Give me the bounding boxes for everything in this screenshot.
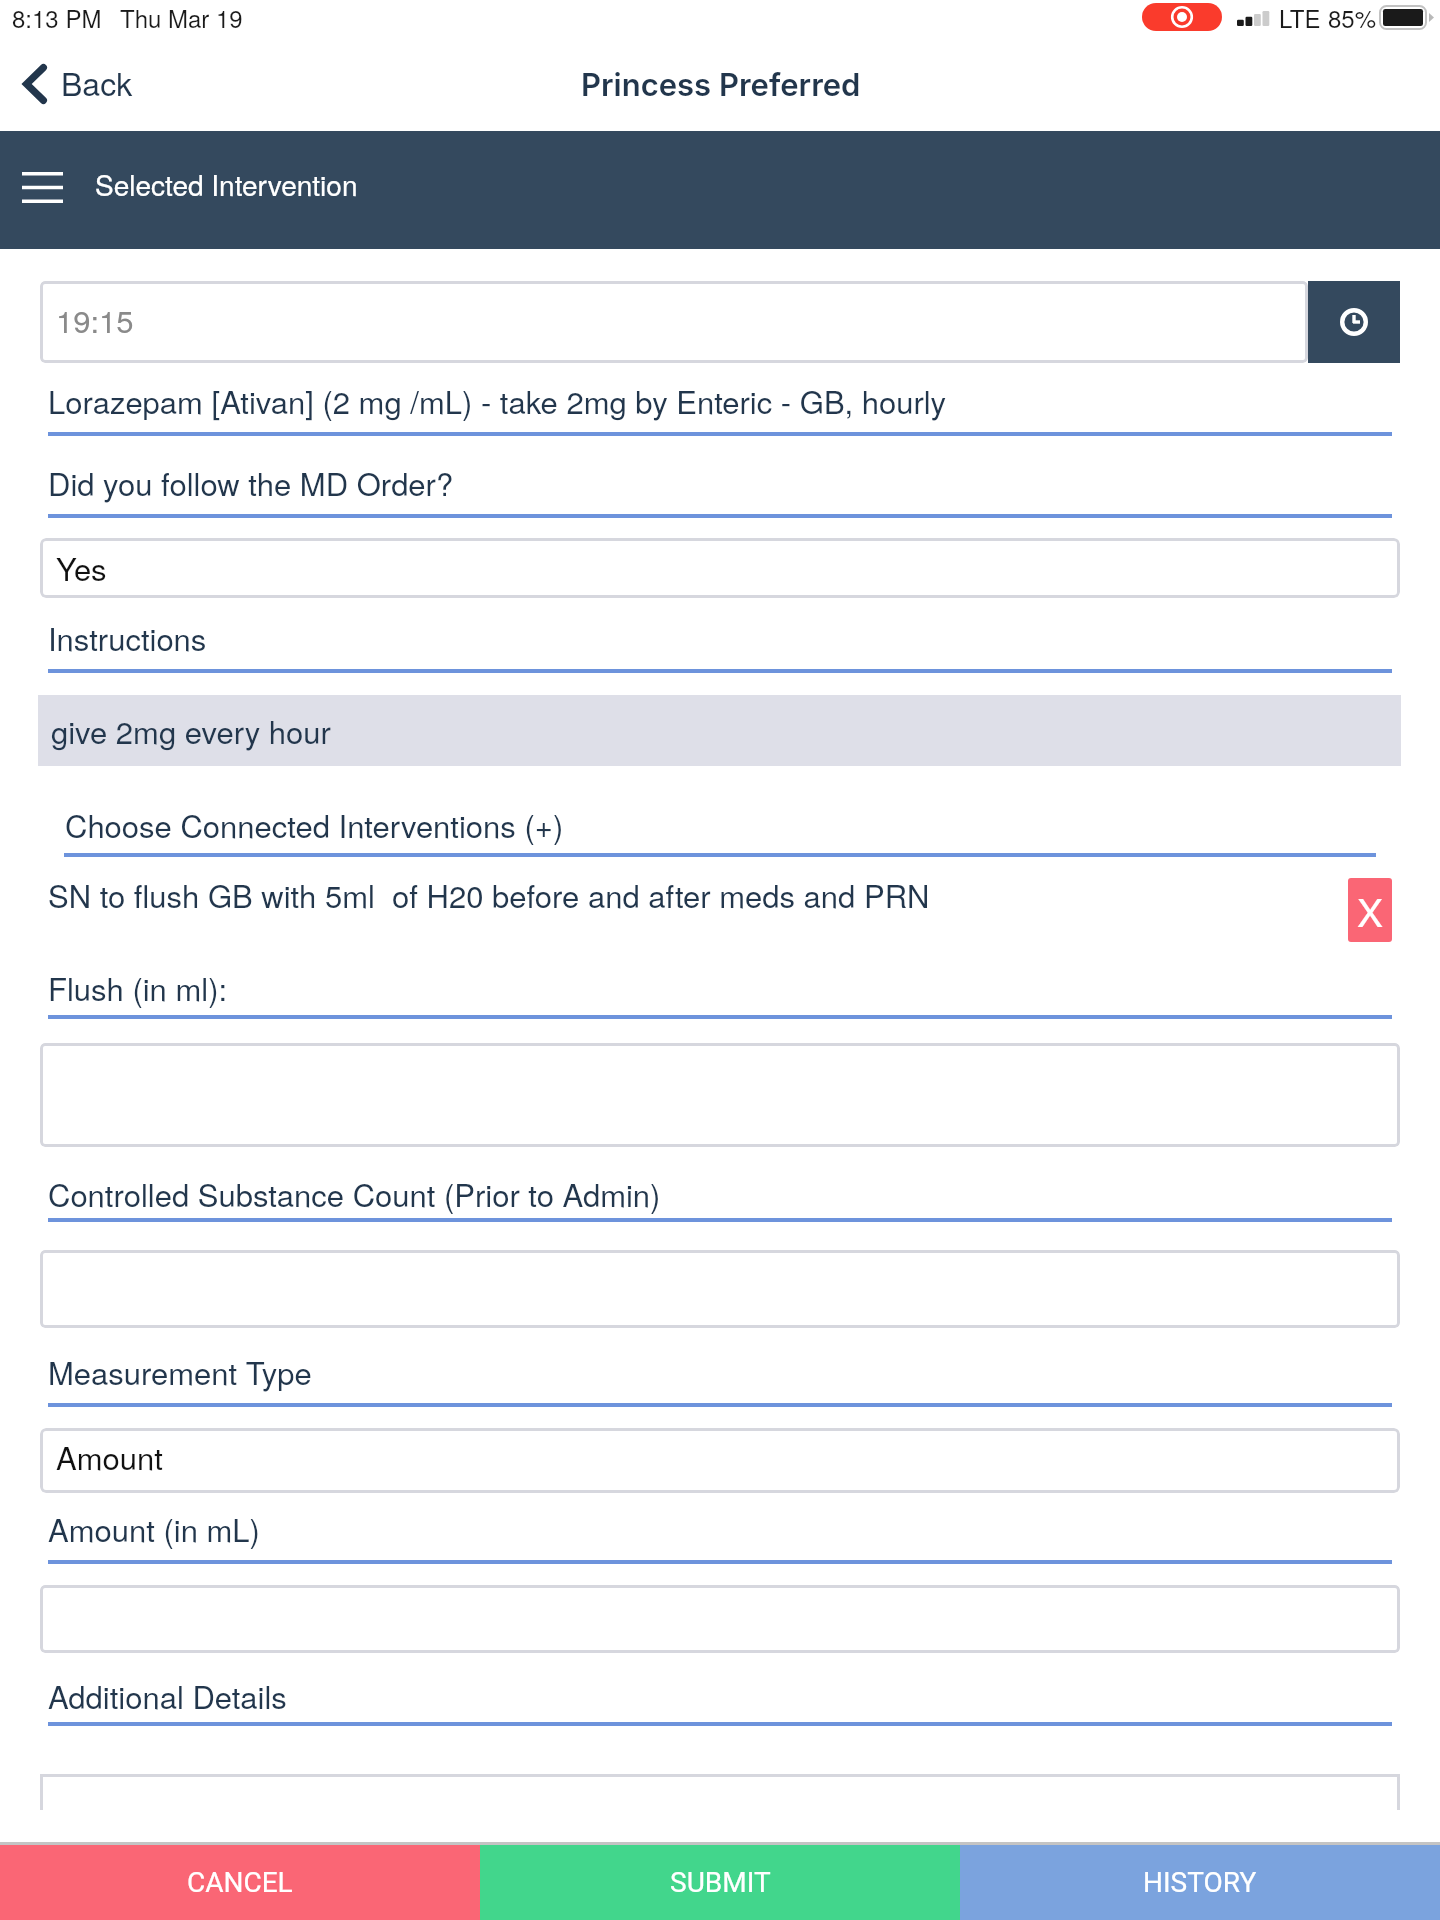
button[interactable] <box>40 1428 1400 1493</box>
button[interactable]: CANCEL <box>0 1845 480 1920</box>
button[interactable] <box>8 54 138 114</box>
staticText: Flush (in ml): <box>48 965 228 1009</box>
button[interactable]: HISTORY <box>960 1845 1440 1920</box>
button[interactable] <box>40 1774 1400 1810</box>
staticText: LTE <box>1279 0 1321 34</box>
button[interactable]: Remove <box>1348 878 1392 942</box>
button[interactable]: Pick time <box>1308 281 1400 363</box>
button[interactable] <box>40 281 1308 363</box>
button[interactable]: SUBMIT <box>480 1845 960 1920</box>
staticText: Thu Mar 19 <box>120 0 243 34</box>
staticText: Selected Intervention <box>95 164 358 204</box>
staticText: give 2mg every hour <box>51 708 331 752</box>
button[interactable] <box>40 1250 1400 1328</box>
staticText: Choose Connected Interventions (+) <box>65 802 564 846</box>
staticText: SN to flush GB with 5ml of H20 before an… <box>48 872 930 916</box>
staticText: SUBMIT <box>670 1866 771 1899</box>
button[interactable] <box>40 538 1400 598</box>
staticText: Amount <box>56 1434 163 1478</box>
staticText: Did you follow the MD Order? <box>48 460 454 504</box>
button[interactable] <box>40 1585 1400 1653</box>
staticText: Measurement Type <box>48 1349 312 1393</box>
staticText: Amount (in mL) <box>48 1506 260 1550</box>
staticText: 8:13 PM <box>12 0 102 34</box>
button[interactable]: Menu <box>8 155 76 219</box>
button[interactable] <box>40 1043 1400 1147</box>
staticText: 19:15 <box>56 297 134 341</box>
staticText: HISTORY <box>1143 1866 1257 1899</box>
staticText: Instructions <box>48 615 207 659</box>
staticText: Yes <box>56 545 107 589</box>
staticText: CANCEL <box>187 1866 293 1899</box>
staticText: Back <box>61 59 133 105</box>
staticText: Additional Details <box>48 1673 287 1717</box>
staticText: Lorazepam [Ativan] (2 mg /mL) - take 2mg… <box>48 378 947 422</box>
staticText: Princess Preferred <box>581 66 861 104</box>
staticText: 85% <box>1328 0 1377 34</box>
staticText: X <box>1357 882 1384 938</box>
staticText: Controlled Substance Count (Prior to Adm… <box>48 1171 661 1215</box>
